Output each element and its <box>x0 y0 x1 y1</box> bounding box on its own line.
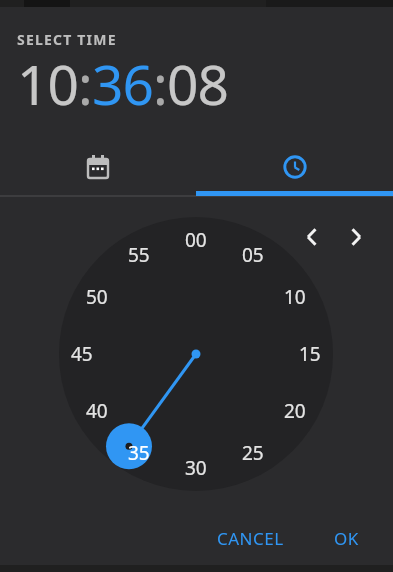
staticText: 40 <box>86 398 108 424</box>
staticText: 15 <box>299 341 321 367</box>
staticText: 55 <box>128 242 150 268</box>
button[interactable] <box>292 217 332 257</box>
staticText: 20 <box>284 398 306 424</box>
button[interactable] <box>196 137 393 197</box>
button[interactable]: CANCEL <box>205 520 295 556</box>
staticText: 10 <box>17 46 78 121</box>
staticText: OK <box>334 527 359 550</box>
staticText: 05 <box>242 242 264 268</box>
staticText: 30 <box>185 455 207 481</box>
button[interactable]: OK <box>315 520 377 556</box>
staticText: 35 <box>128 440 150 466</box>
button[interactable] <box>336 217 376 257</box>
staticText: 50 <box>86 284 108 310</box>
staticText: SELECT TIME <box>17 30 117 49</box>
staticText: CANCEL <box>217 527 284 550</box>
staticText: : <box>78 46 92 121</box>
staticText: 10 <box>284 284 306 310</box>
staticText: : <box>153 46 167 121</box>
staticText: 45 <box>71 341 93 367</box>
staticText: 08 <box>167 46 228 121</box>
staticText: 00 <box>185 227 207 253</box>
staticText: 25 <box>242 440 264 466</box>
button[interactable] <box>0 137 196 197</box>
staticText: 36 <box>92 46 153 121</box>
